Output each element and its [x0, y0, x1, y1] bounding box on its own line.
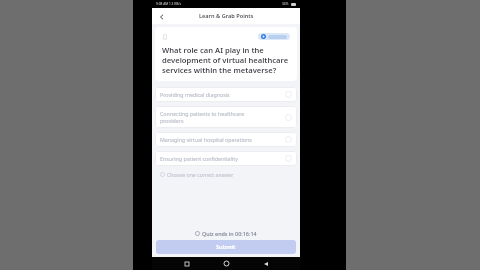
staticText: What role can AI play in the development… [162, 45, 290, 75]
staticText: Connecting patients to healthcare provid… [160, 110, 245, 124]
button[interactable]: Managing virtual hospital operations [155, 132, 297, 147]
staticText: Providing medical diagnosis [160, 91, 230, 98]
staticText: Ensuring patient confidentiality [160, 155, 238, 162]
staticText: Learn & Grab Points [199, 12, 254, 20]
button[interactable]: Recents [181, 258, 192, 269]
button[interactable]: Back [156, 11, 167, 22]
button[interactable]: Back [260, 258, 271, 269]
staticText: 9:08 AM 1.3 KB/s [156, 2, 181, 6]
button[interactable]: Home [221, 258, 232, 269]
staticText: Choose one correct answer [167, 171, 234, 178]
staticText: Managing virtual hospital operations [160, 136, 252, 143]
staticText: Quiz ends in 00:16:14 [202, 230, 257, 237]
button[interactable]: Submit [156, 240, 296, 254]
staticText: 34% [282, 2, 289, 6]
staticText: Submit [216, 243, 236, 251]
button[interactable]: Ensuring patient confidentiality [155, 151, 297, 166]
button[interactable] [258, 33, 290, 40]
button[interactable]: Connecting patients to healthcare provid… [155, 106, 297, 128]
button[interactable]: Providing medical diagnosis [155, 87, 297, 102]
